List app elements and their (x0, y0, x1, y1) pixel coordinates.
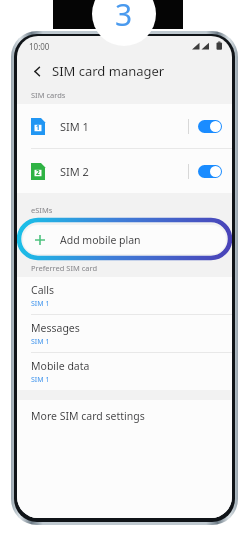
staticText: eSIMs (31, 205, 53, 215)
button[interactable]: 1 (17, 104, 232, 148)
staticText: 10:00 (29, 41, 50, 52)
button[interactable]: Toggle (198, 165, 222, 178)
button[interactable]: Messages (17, 315, 232, 352)
button[interactable]: 2 (17, 149, 232, 193)
staticText: SIM 1 (60, 119, 89, 134)
staticText: SIM 1 (31, 375, 50, 385)
button[interactable]: Back (27, 61, 47, 81)
staticText: SIM 1 (31, 299, 50, 309)
staticText: Mobile data (31, 359, 90, 373)
button[interactable]: Calls (17, 277, 232, 314)
staticText: SIM cards (31, 90, 66, 100)
button[interactable]: Toggle (198, 120, 222, 133)
staticText: 3 (115, 0, 133, 35)
staticText: 1 (36, 123, 40, 132)
staticText: Messages (31, 321, 80, 335)
staticText: SIM 1 (31, 337, 50, 347)
staticText: SIM card manager (52, 62, 165, 80)
button[interactable]: More SIM card settings (17, 400, 232, 432)
button[interactable]: Add mobile plan (23, 225, 226, 254)
staticText: Calls (31, 283, 54, 297)
staticText: More SIM card settings (31, 409, 145, 423)
staticText: SIM 2 (60, 164, 89, 179)
staticText: Preferred SIM card (31, 263, 98, 273)
button[interactable]: Mobile data (17, 353, 232, 390)
staticText: 2 (36, 168, 40, 177)
staticText: Add mobile plan (60, 233, 141, 247)
